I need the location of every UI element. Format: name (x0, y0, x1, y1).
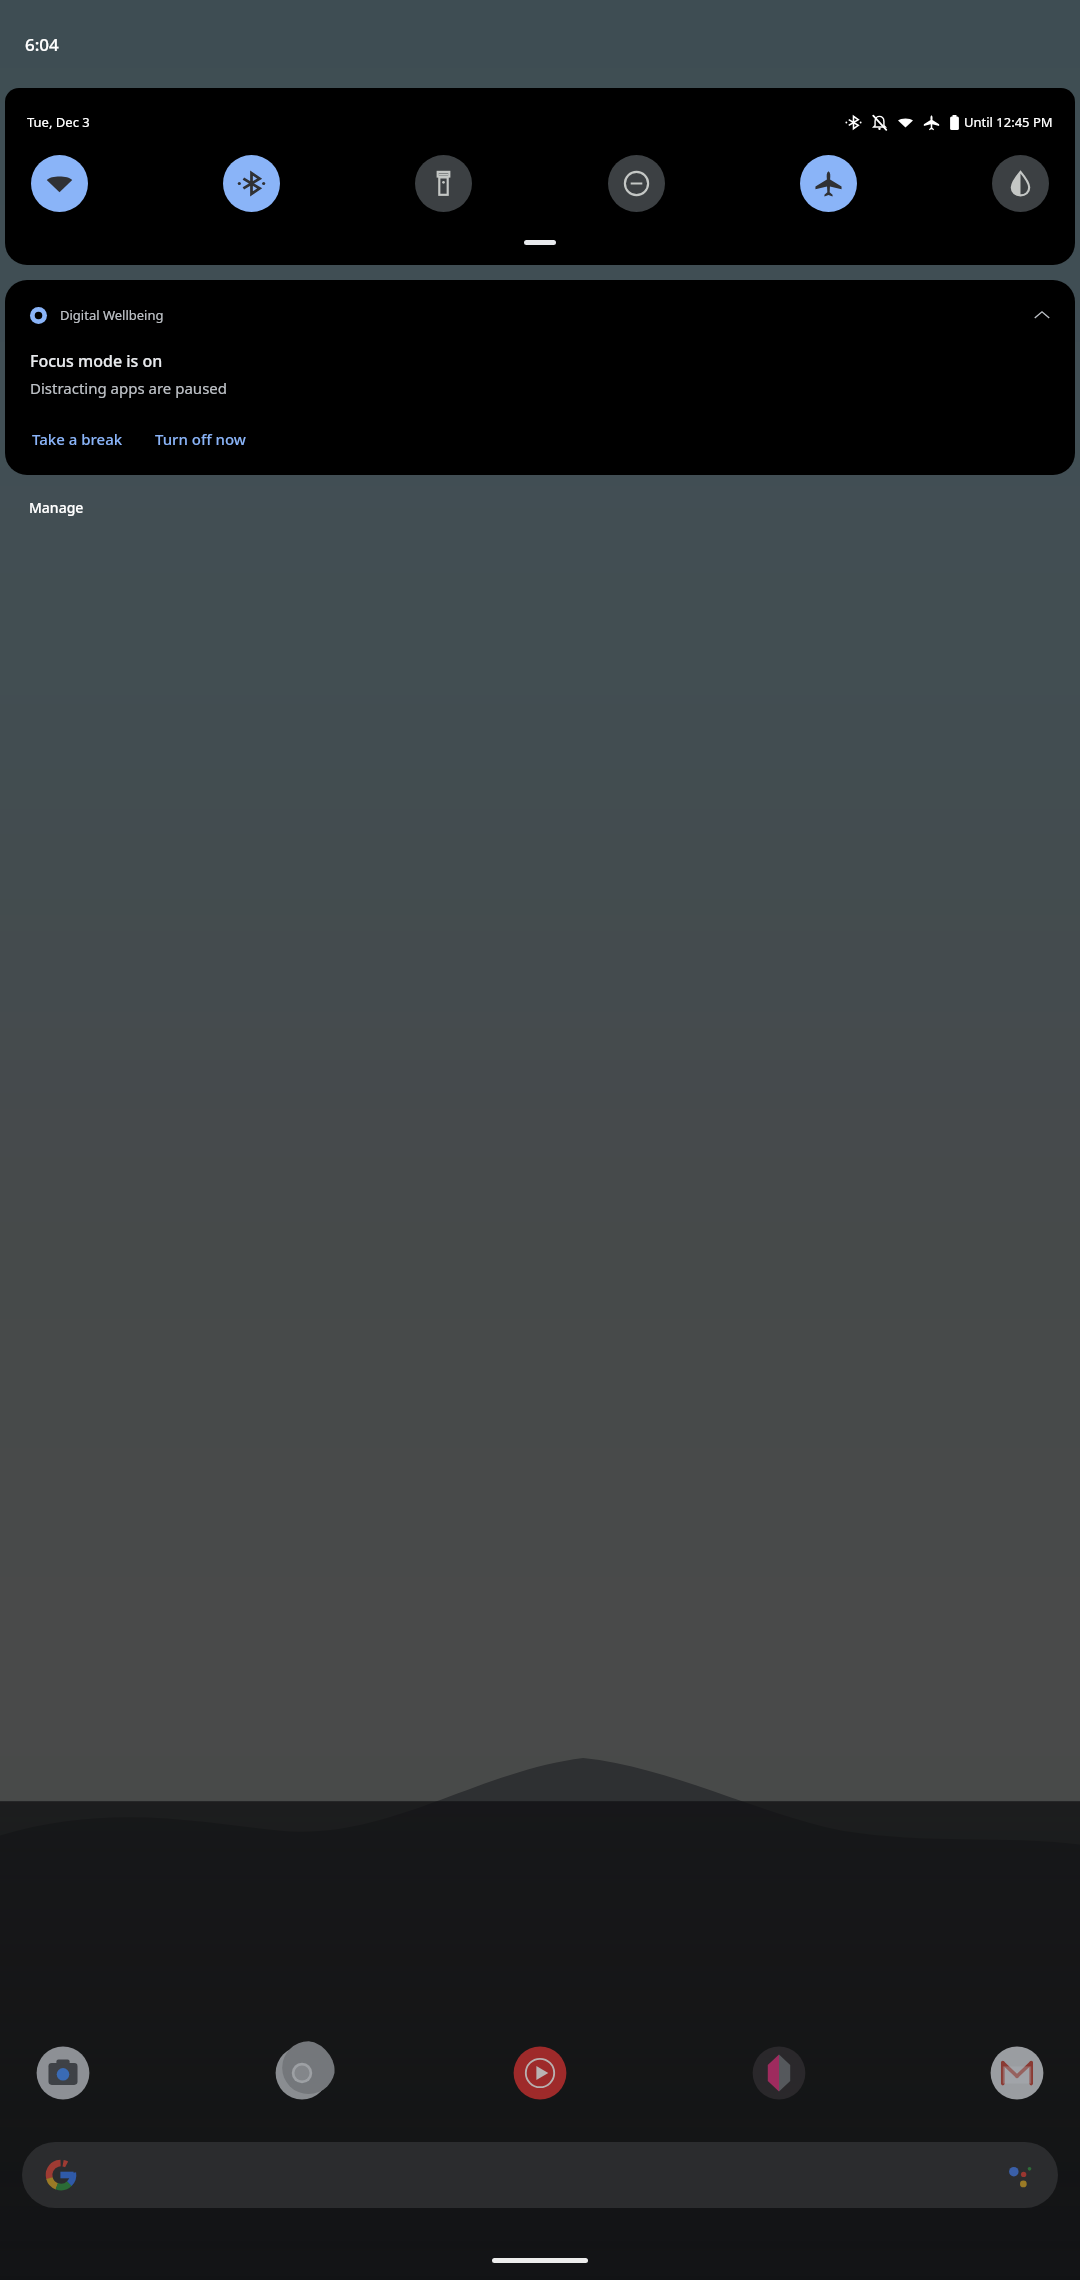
button[interactable]: Bluetooth (223, 155, 280, 212)
button[interactable]: Digital Wellbeing (5, 280, 1075, 475)
button[interactable]: YouTube Music (507, 2040, 573, 2106)
button[interactable]: Manage (25, 494, 88, 521)
staticText: 6:04 (25, 33, 59, 56)
button[interactable]: Do not disturb (608, 155, 665, 212)
button[interactable]: Photos (746, 2040, 812, 2106)
button[interactable]: Turn off now (153, 425, 248, 453)
staticText: Focus mode is on (30, 350, 163, 372)
staticText: Tue, Dec 3 (27, 113, 90, 131)
staticText: Digital Wellbeing (60, 306, 164, 324)
staticText: Turn off now (155, 429, 246, 449)
staticText: Distracting apps are paused (30, 378, 228, 398)
button[interactable]: Dark theme (992, 155, 1049, 212)
button[interactable]: Airplane mode (800, 155, 857, 212)
staticText: Take a break (32, 429, 123, 449)
staticText: Manage (29, 498, 84, 517)
button[interactable]: Wi-Fi (31, 155, 88, 212)
staticText: Until 12:45 PM (964, 113, 1053, 131)
button[interactable]: Gmail (984, 2040, 1050, 2106)
button[interactable]: Search (22, 2142, 1058, 2208)
button[interactable]: Take a break (30, 425, 125, 453)
button[interactable]: Flashlight (415, 155, 472, 212)
button[interactable]: Camera (30, 2040, 96, 2106)
button[interactable]: Chrome (269, 2040, 335, 2106)
button[interactable]: Collapse (1027, 300, 1057, 330)
